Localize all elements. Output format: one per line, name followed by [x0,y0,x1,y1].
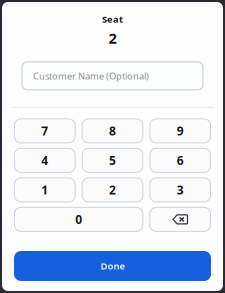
button[interactable]: 6 [150,148,210,172]
staticText: 3 [177,182,184,198]
staticText: 2 [108,28,116,48]
button[interactable]: Done [14,251,211,281]
button[interactable]: 9 [150,119,210,143]
button[interactable]: 7 [14,119,75,143]
staticText: 0 [75,211,82,227]
staticText: 9 [177,123,184,139]
button[interactable]: Delete [150,207,210,231]
button[interactable]: 8 [82,119,143,143]
staticText: 1 [41,182,48,198]
staticText: 8 [109,123,116,139]
staticText: 4 [41,152,48,168]
textField[interactable]: Customer Name (Optional) [22,62,203,90]
staticText: Done [100,260,124,272]
button[interactable]: 3 [150,178,210,202]
staticText: 2 [109,182,116,198]
staticText: 7 [41,123,48,139]
button[interactable]: 2 [82,178,143,202]
staticText: 6 [177,152,184,168]
button[interactable]: 0 [14,207,143,231]
button[interactable]: 1 [14,178,75,202]
staticText: Seat [102,13,123,25]
staticText: 5 [109,152,116,168]
button[interactable]: 5 [82,148,143,172]
staticText: Customer Name (Optional) [33,70,149,82]
button[interactable]: 4 [14,148,75,172]
